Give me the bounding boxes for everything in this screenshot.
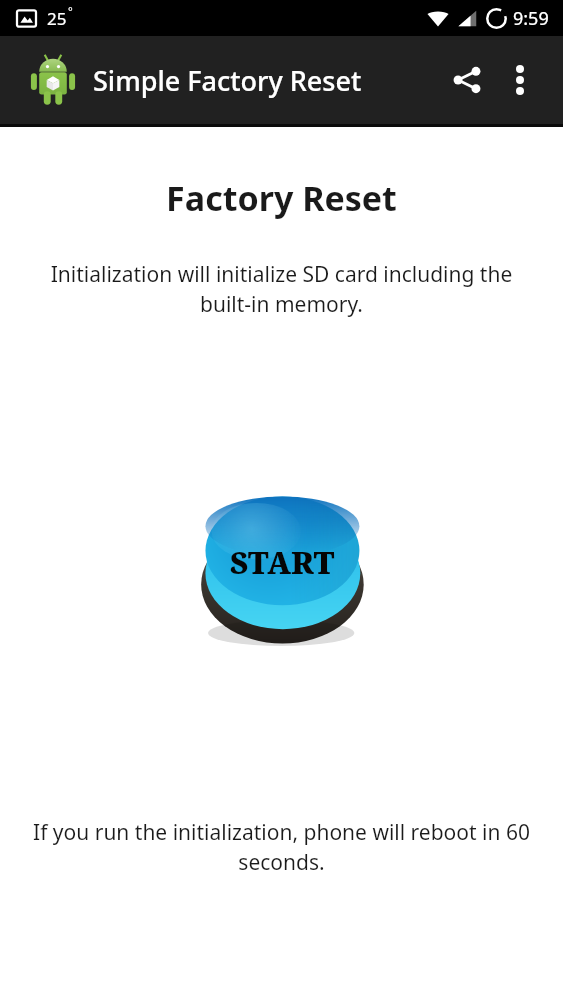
staticText: 9:59 [513,6,549,31]
staticText: Simple Factory Reset [93,62,362,99]
staticText: If you run the initialization, phone wil… [26,818,537,876]
staticText: Factory Reset [166,175,397,221]
button[interactable]: More options [495,55,545,105]
button[interactable]: Start factory reset [196,490,368,650]
staticText: 25 [47,7,67,30]
button[interactable]: Share [439,52,495,108]
staticText: ° [68,3,73,18]
staticText: START [230,542,335,583]
staticText: Initialization will initialize SD card i… [26,260,537,318]
